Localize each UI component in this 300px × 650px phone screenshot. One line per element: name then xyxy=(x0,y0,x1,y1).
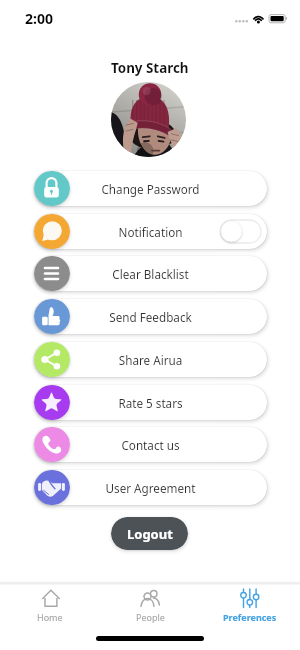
button[interactable]: Rate 5 stars xyxy=(34,385,267,420)
button[interactable]: User Agreement xyxy=(34,470,267,505)
staticText: Contact us xyxy=(34,437,267,453)
staticText: Logout xyxy=(127,525,173,543)
button[interactable]: Contact us xyxy=(34,427,267,462)
button[interactable]: Preferences xyxy=(200,581,300,627)
staticText: Clear Blacklist xyxy=(34,266,267,282)
button[interactable]: Logout xyxy=(111,517,188,550)
button[interactable]: Profile photo xyxy=(111,82,186,157)
staticText: Rate 5 stars xyxy=(34,395,267,411)
button[interactable]: Change Password xyxy=(34,171,267,206)
staticText: Send Feedback xyxy=(34,309,267,325)
button[interactable]: Notification xyxy=(34,214,267,249)
button[interactable]: People xyxy=(100,581,200,627)
button[interactable]: Share Airua xyxy=(34,342,267,377)
button[interactable]: Notification toggle xyxy=(220,220,261,243)
button[interactable]: Clear Blacklist xyxy=(34,256,267,291)
staticText: Preferences xyxy=(223,611,277,623)
staticText: Change Password xyxy=(34,181,267,197)
button[interactable]: Home xyxy=(0,581,100,627)
staticText: Home xyxy=(37,611,63,623)
staticText: Share Airua xyxy=(34,352,267,368)
staticText: Tony Starch xyxy=(111,59,189,77)
staticText: People xyxy=(136,611,165,623)
staticText: 2:00 xyxy=(25,9,53,28)
staticText: Notification xyxy=(34,224,267,240)
staticText: User Agreement xyxy=(34,480,267,496)
button[interactable]: Send Feedback xyxy=(34,299,267,334)
